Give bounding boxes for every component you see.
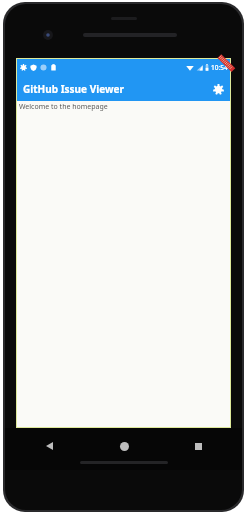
staticText: GitHub Issue Viewer — [23, 82, 124, 96]
button[interactable]: Home — [114, 436, 134, 456]
staticText: 10:54 — [211, 63, 228, 72]
staticText: Welcome to the homepage — [19, 102, 108, 112]
button[interactable]: Settings — [208, 79, 228, 99]
button[interactable]: Recent apps — [188, 436, 208, 456]
button[interactable]: Back — [39, 436, 59, 456]
